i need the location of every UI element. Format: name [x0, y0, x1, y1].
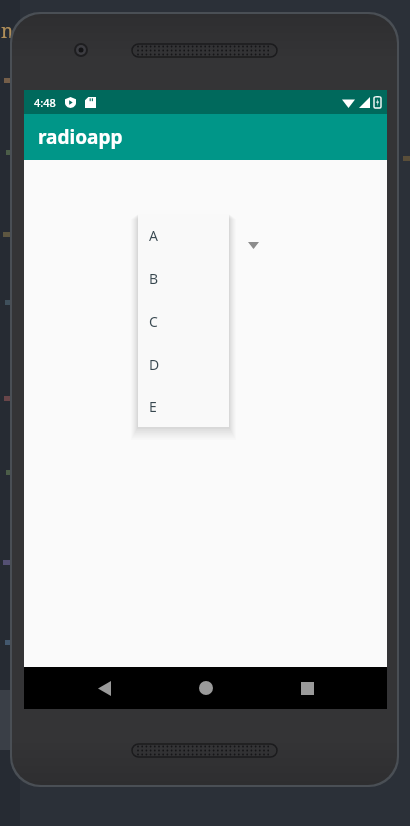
- button[interactable]: A: [138, 214, 229, 257]
- staticText: A: [149, 226, 158, 245]
- staticText: C: [149, 312, 158, 331]
- button[interactable]: Recent apps: [285, 667, 329, 709]
- button[interactable]: D: [138, 343, 229, 386]
- button[interactable]: Back: [82, 667, 126, 709]
- staticText: radioapp: [38, 124, 123, 150]
- staticText: nc: [1, 18, 23, 44]
- staticText: B: [149, 269, 159, 288]
- button[interactable]: C: [138, 300, 229, 343]
- button[interactable]: B: [138, 257, 229, 300]
- button[interactable]: E: [138, 386, 229, 427]
- staticText: E: [149, 397, 157, 416]
- button[interactable]: Open dropdown: [240, 232, 266, 258]
- staticText: 4:48: [34, 95, 56, 110]
- button[interactable]: Home: [184, 667, 228, 709]
- staticText: D: [149, 355, 160, 374]
